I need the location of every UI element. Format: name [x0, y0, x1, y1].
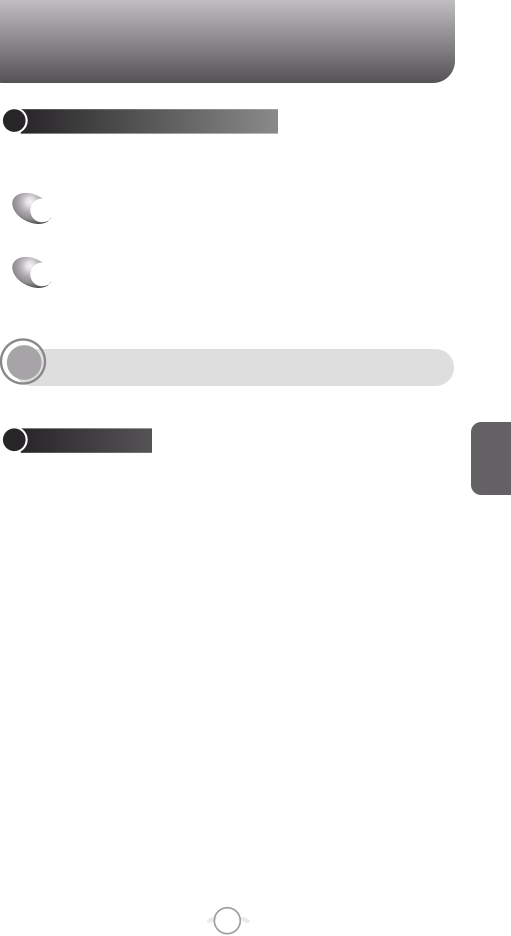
button[interactable]: Progress	[0, 339, 455, 386]
button[interactable]: Home	[214, 908, 240, 934]
button[interactable]: Section one	[0, 107, 278, 135]
button[interactable]: Section two	[0, 426, 152, 454]
button[interactable]: Item two	[13, 256, 55, 289]
button[interactable]: Open drawer	[471, 422, 511, 495]
button[interactable]: Item one	[13, 192, 55, 225]
button[interactable]: Featured	[0, 0, 455, 83]
